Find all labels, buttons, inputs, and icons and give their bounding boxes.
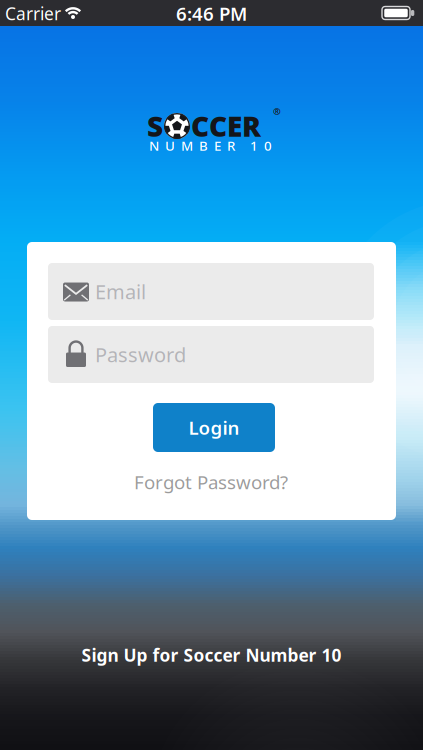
button[interactable]: Password [48, 326, 374, 383]
button[interactable]: Forgot Password? [134, 470, 288, 494]
button[interactable]: Sign Up for Soccer Number 10 [81, 643, 341, 666]
staticText: Login [188, 415, 239, 440]
staticText: Carrier [5, 2, 61, 25]
staticText: Password [95, 341, 186, 368]
staticText: S [147, 107, 163, 145]
staticText: Email [95, 278, 146, 305]
button[interactable]: Login [153, 403, 275, 452]
staticText: Sign Up for Soccer Number 10 [81, 643, 341, 666]
button[interactable]: Email [48, 263, 374, 320]
staticText: NUMBER 10 [149, 137, 272, 154]
staticText: Forgot Password? [134, 470, 288, 494]
staticText: CCER [191, 107, 261, 145]
staticText: ® [273, 105, 281, 118]
staticText: 6:46 PM [176, 1, 247, 26]
